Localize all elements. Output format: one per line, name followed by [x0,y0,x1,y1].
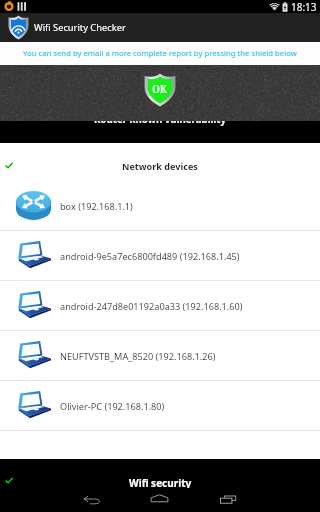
button[interactable]: android-247d8e01192a0a33 (192.168.1.60) [0,281,320,331]
button[interactable]: You can send by email a more complete re… [0,42,320,65]
staticText: NEUFTVSTB_MA_8520 (192.168.1.26) [60,350,216,362]
button[interactable]: box (192.168.1.1) [0,181,320,231]
button[interactable]: Wifi security [0,459,320,488]
other: Security status OK [144,73,176,107]
staticText: OK [152,82,168,96]
button[interactable]: Network devices [0,143,320,181]
button[interactable]: Olivier-PC (192.168.1.80) [0,381,320,431]
button[interactable]: Security status OK [0,65,320,121]
staticText: 18:13 [291,0,317,13]
button[interactable]: Back [62,488,122,512]
button[interactable]: Home [130,488,190,512]
button[interactable]: NEUFTVSTB_MA_8520 (192.168.1.26) [0,331,320,381]
button[interactable]: Recent apps [199,488,259,512]
staticText: Wifi security [129,476,192,488]
staticText: Wifi Security Checker [34,21,126,34]
staticText: Olivier-PC (192.168.1.80) [60,400,165,412]
staticText: android-9e5a7ec6800fd489 (192.168.1.45) [60,250,240,262]
button[interactable]: android-9e5a7ec6800fd489 (192.168.1.45) [0,231,320,281]
staticText: Router known vulnerability [94,113,227,126]
staticText: Network devices [122,160,198,172]
staticText: You can send by email a more complete re… [23,48,297,59]
staticText: box (192.168.1.1) [60,200,133,212]
staticText: android-247d8e01192a0a33 (192.168.1.60) [60,300,243,312]
